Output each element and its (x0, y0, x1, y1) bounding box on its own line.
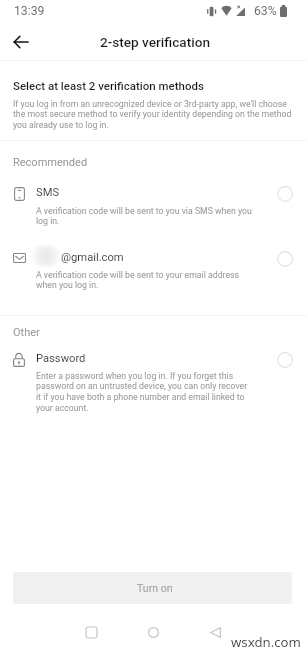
staticText: A verification code will be sent to you … (36, 206, 258, 227)
staticText: A verification code will be sent to your… (36, 270, 258, 291)
staticText: @gmail.com (61, 251, 124, 264)
staticText: SMS (36, 186, 60, 199)
staticText: Recommended (13, 156, 88, 169)
button[interactable]: Select method (277, 251, 293, 267)
staticText: If you log in from an unrecognized devic… (13, 99, 294, 131)
button[interactable]: Back (4, 25, 38, 59)
staticText: 2-step verification (100, 34, 210, 50)
staticText: wsxdn.com (231, 633, 301, 650)
staticText: Password (36, 352, 86, 365)
button[interactable]: Home (137, 616, 170, 649)
button[interactable]: Back (199, 616, 232, 649)
button[interactable]: Select method (277, 352, 293, 368)
button[interactable]: @gmail.com (0, 245, 307, 298)
staticText: Other (13, 326, 40, 339)
button[interactable]: Recent apps (75, 616, 108, 649)
button[interactable]: SMS (0, 178, 307, 231)
staticText: Turn on (137, 582, 173, 594)
staticText: 13:39 (14, 4, 45, 18)
staticText: Enter a password when you log in. If you… (36, 371, 250, 414)
button[interactable]: Password (0, 346, 307, 426)
button[interactable]: Turn on (13, 572, 292, 604)
staticText: Select at least 2 verification methods (13, 79, 204, 92)
button[interactable]: Select method (277, 186, 293, 202)
staticText: 63% (254, 4, 277, 18)
